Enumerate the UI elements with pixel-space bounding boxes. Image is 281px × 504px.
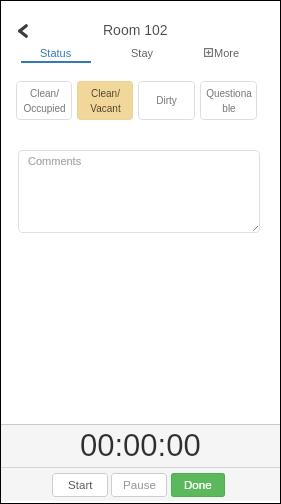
staticText: Room 102	[103, 22, 168, 38]
staticText: Stay	[131, 47, 154, 59]
button[interactable]: Status	[21, 47, 91, 65]
staticText: Questiona ble	[206, 88, 252, 114]
button[interactable]: Clean/ Occupied	[16, 81, 72, 120]
staticText: Clean/ Vacant	[90, 88, 121, 114]
button[interactable]: Clean/ Vacant	[77, 81, 133, 120]
staticText: Comments	[28, 155, 82, 167]
button[interactable]: More	[188, 47, 257, 64]
staticText: Status	[40, 47, 72, 59]
button[interactable]: Done	[171, 473, 225, 497]
staticText: Clean/ Occupied	[23, 88, 66, 114]
staticText: Start	[68, 478, 93, 491]
button[interactable]: Questiona ble	[200, 81, 257, 120]
staticText: 00:00:00	[80, 428, 201, 463]
staticText: More	[214, 47, 240, 59]
button[interactable]: Comments	[18, 150, 260, 233]
button[interactable]: Pause	[111, 473, 167, 497]
button[interactable]: Stay	[108, 47, 177, 64]
staticText: Pause	[123, 478, 156, 491]
button[interactable]: Start	[52, 473, 108, 497]
button[interactable]: Back	[9, 17, 36, 44]
staticText: Done	[184, 478, 212, 491]
button[interactable]: Dirty	[138, 81, 195, 120]
staticText: Dirty	[156, 95, 177, 106]
